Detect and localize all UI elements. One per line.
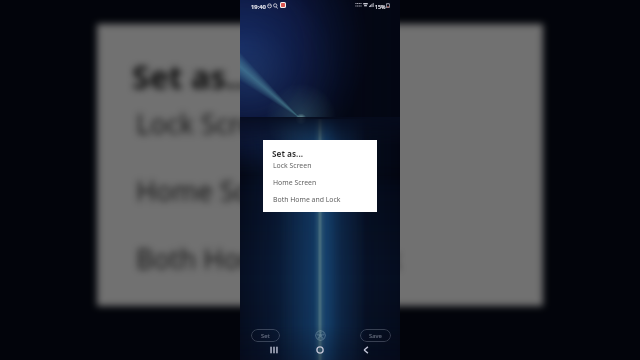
button[interactable]: Home Screen <box>97 156 543 215</box>
staticText: Set as... <box>132 55 254 99</box>
staticText: Lock Screen <box>136 105 287 142</box>
staticText: Home Screen <box>136 172 306 209</box>
staticText: Both Home and Lock <box>136 240 401 277</box>
button[interactable]: Lock Screen <box>263 157 377 172</box>
button[interactable]: Set <box>251 329 280 342</box>
staticText: Both Home and Lock <box>273 195 341 204</box>
button[interactable]: Back <box>359 343 373 357</box>
button[interactable]: Home Screen <box>263 174 377 189</box>
button[interactable]: Lock Screen <box>97 89 543 148</box>
staticText: 15% <box>375 3 386 10</box>
button[interactable]: Save <box>360 329 391 342</box>
staticText: Lock Screen <box>273 161 312 170</box>
button[interactable]: Recents <box>267 343 281 357</box>
button[interactable]: Both Home and Lock <box>263 191 377 206</box>
button[interactable]: Wallpaper info <box>315 330 326 341</box>
button[interactable]: Home <box>313 343 327 357</box>
staticText: Save <box>369 332 382 340</box>
staticText: Set as... <box>272 148 303 159</box>
staticText: 19:40 <box>251 3 266 11</box>
staticText: Home Screen <box>273 178 317 187</box>
staticText: Set <box>261 332 270 340</box>
button[interactable]: Both Home and Lock <box>97 224 543 283</box>
